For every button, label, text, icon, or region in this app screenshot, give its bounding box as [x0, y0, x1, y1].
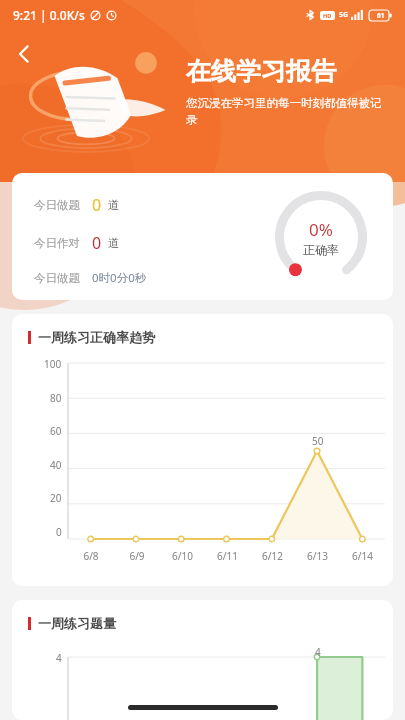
staticText: HD: [323, 12, 332, 19]
staticText: 5G: [339, 10, 349, 20]
staticText: 0时0分0秒: [92, 270, 147, 286]
staticText: 今日做题: [34, 198, 80, 212]
staticText: 0: [92, 194, 102, 216]
button[interactable]: 一周练习题量: [12, 600, 393, 720]
button[interactable]: 一周练习正确率趋势: [12, 314, 393, 586]
staticText: 100: [44, 357, 62, 371]
staticText: 4: [56, 651, 62, 665]
staticText: 您沉浸在学习里的每一时刻都值得被记录: [186, 96, 382, 127]
staticText: 道: [108, 198, 120, 212]
staticText: 50: [312, 434, 324, 448]
staticText: 一周练习题量: [38, 615, 116, 631]
staticText: 9:21 | 0.0K/s: [13, 7, 85, 23]
staticText: 20: [50, 491, 62, 505]
staticText: 0: [92, 232, 102, 254]
staticText: 60: [50, 424, 62, 438]
staticText: 0%: [309, 218, 333, 241]
button[interactable]: Back: [4, 34, 44, 74]
staticText: 一周练习正确率趋势: [38, 329, 155, 345]
staticText: 在线学习报告: [186, 56, 336, 87]
staticText: 今日作对: [34, 236, 80, 250]
staticText: 6/11: [217, 549, 238, 563]
staticText: 80: [50, 391, 62, 405]
staticText: 6/10: [172, 549, 193, 563]
staticText: 6/8: [83, 549, 99, 563]
staticText: 6/13: [307, 549, 328, 563]
button[interactable]: 今日做题: [12, 173, 393, 300]
staticText: 4: [315, 645, 321, 659]
staticText: 正确率: [303, 242, 339, 257]
staticText: 61: [377, 11, 385, 20]
staticText: 40: [50, 458, 62, 472]
staticText: 6/14: [352, 549, 373, 563]
staticText: 道: [108, 236, 120, 250]
staticText: 0: [56, 525, 62, 539]
staticText: 6/9: [129, 549, 145, 563]
staticText: 今日做题: [34, 271, 80, 285]
staticText: 6/12: [262, 549, 283, 563]
